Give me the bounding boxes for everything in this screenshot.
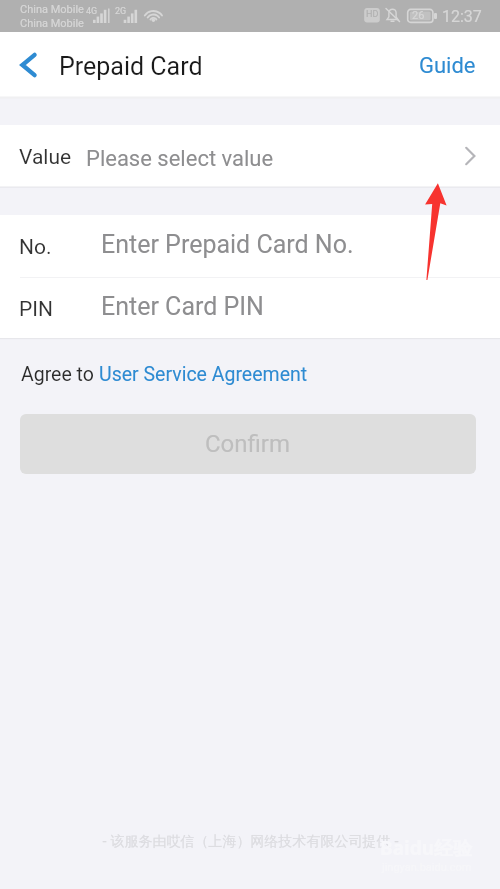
staticText: HD [366, 9, 379, 20]
staticText: PIN [19, 297, 53, 322]
staticText: 4G [86, 6, 98, 17]
staticText: Value [19, 145, 72, 170]
staticText: China Mobile [20, 3, 84, 16]
staticText: Enter Prepaid Card No. [101, 230, 354, 259]
button[interactable]: PIN [0, 277, 500, 339]
staticText: Please select value [86, 146, 274, 172]
staticText: Prepaid Card [59, 52, 203, 81]
staticText: China Mobile [20, 17, 84, 30]
button[interactable]: Value [0, 125, 500, 187]
staticText: - 该服务由哎信（上海）网络技术有限公司提供 - [102, 831, 399, 850]
staticText: 12:37 [442, 7, 482, 26]
staticText: Agree to [21, 363, 99, 386]
staticText: Guide [419, 53, 476, 79]
button[interactable]: Back [0, 39, 52, 91]
staticText: 2G [115, 6, 127, 17]
staticText: Confirm [205, 430, 291, 458]
staticText: Enter Card PIN [101, 292, 264, 321]
button[interactable]: Confirm [20, 414, 476, 474]
button[interactable]: User Service Agreement [99, 363, 308, 386]
button[interactable]: No. [0, 215, 500, 277]
button[interactable]: Guide [403, 42, 500, 88]
staticText: 26 [412, 9, 425, 22]
staticText: No. [19, 235, 52, 260]
